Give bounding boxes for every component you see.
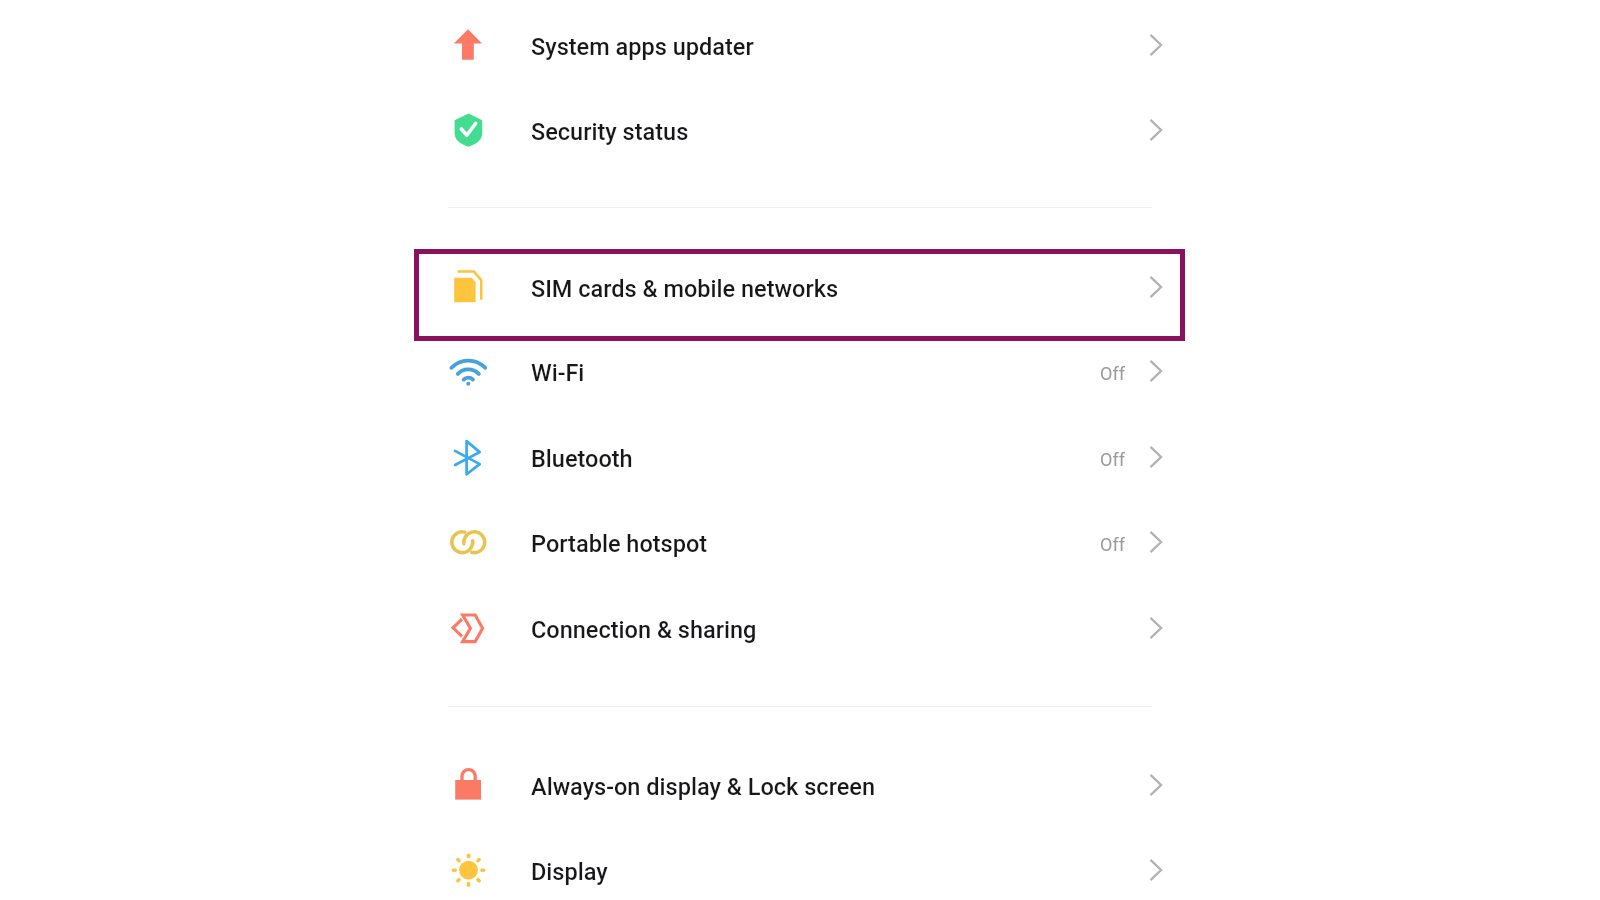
staticText: SIM cards & mobile networks xyxy=(531,275,839,303)
staticText: Connection & sharing xyxy=(531,616,757,644)
staticText: System apps updater xyxy=(531,33,754,61)
other: Wi-Fi xyxy=(448,351,488,391)
staticText: Off xyxy=(1100,449,1125,470)
staticText: Always-on display & Lock screen xyxy=(531,773,875,801)
other: Security status xyxy=(448,110,488,150)
staticText: Off xyxy=(1100,363,1125,384)
staticText: Off xyxy=(1100,534,1125,555)
staticText: Wi-Fi xyxy=(531,359,585,387)
staticText: Security status xyxy=(531,118,689,146)
other: Lock screen xyxy=(448,765,488,805)
staticText: Bluetooth xyxy=(531,445,633,473)
other: System apps updater xyxy=(448,25,488,65)
button[interactable]: System apps updater xyxy=(414,3,1185,87)
other: Portable hotspot xyxy=(448,522,488,562)
other: Bluetooth xyxy=(448,437,488,477)
staticText: Display xyxy=(531,858,608,886)
staticText: Portable hotspot xyxy=(531,530,708,558)
button[interactable]: Connection and sharing xyxy=(414,586,1185,670)
button[interactable]: Lock screen xyxy=(414,743,1185,827)
button[interactable]: Wi-Fi xyxy=(414,329,1185,413)
other: SIM cards xyxy=(448,267,488,307)
other: Connection and sharing xyxy=(448,608,488,648)
other: Display xyxy=(448,850,488,890)
button[interactable]: SIM cards xyxy=(414,245,1185,329)
button[interactable]: Bluetooth xyxy=(414,415,1185,499)
button[interactable]: Portable hotspot xyxy=(414,500,1185,584)
button[interactable]: Display xyxy=(414,828,1185,900)
button[interactable]: Security status xyxy=(414,88,1185,172)
